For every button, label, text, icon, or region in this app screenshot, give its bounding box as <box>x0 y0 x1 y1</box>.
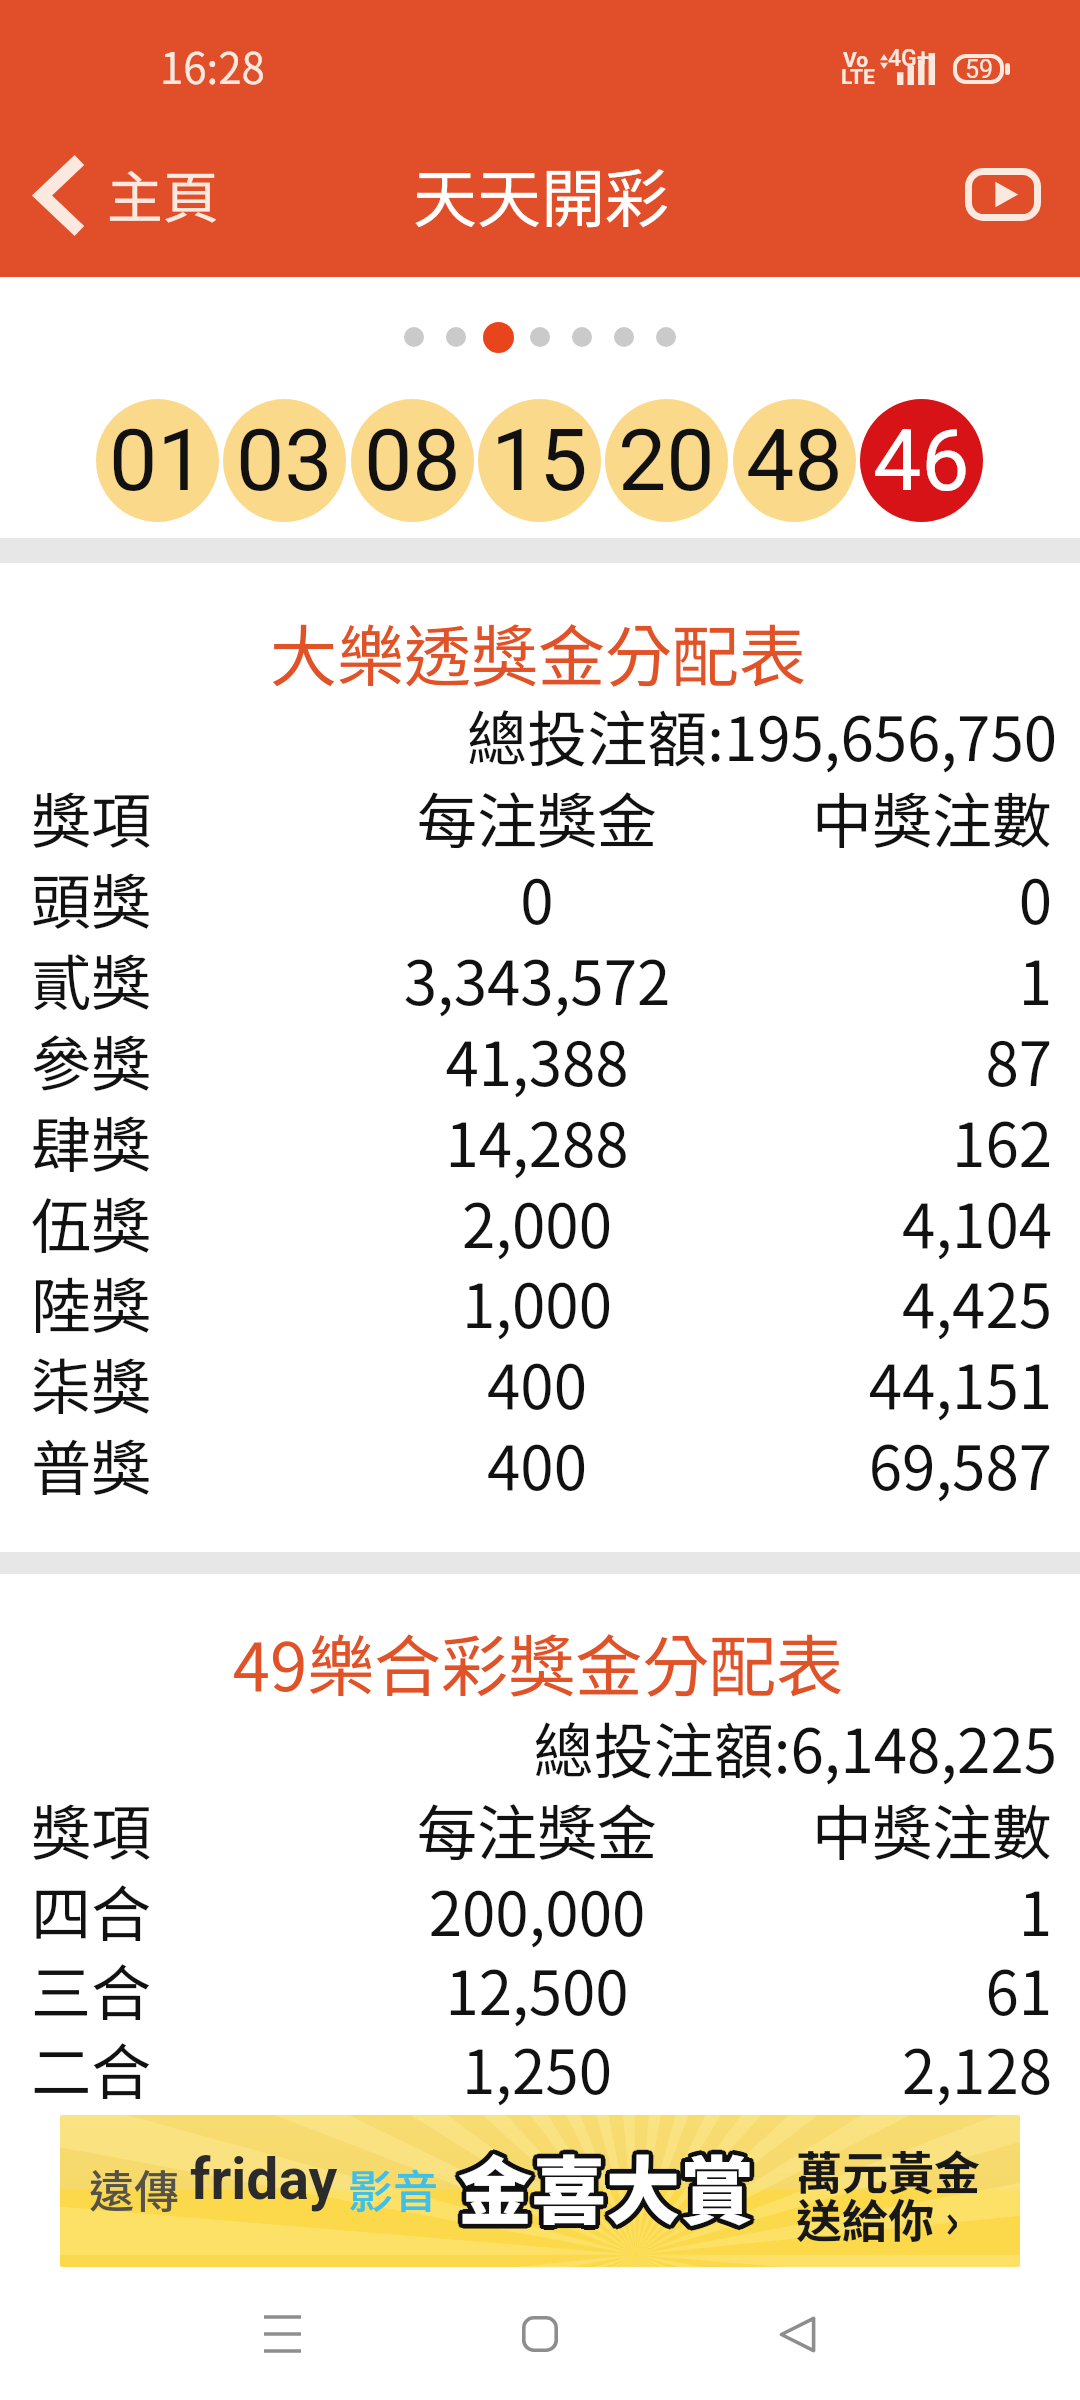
staticText: 金喜大賞 <box>458 2135 754 2242</box>
staticText: 金喜大賞 <box>454 2129 750 2236</box>
staticText: 金喜大賞 <box>455 2136 751 2243</box>
staticText: 貳獎 <box>31 935 151 1022</box>
button[interactable]: 08 <box>351 399 474 522</box>
staticText: 金喜大賞 <box>462 2131 758 2238</box>
button[interactable] <box>404 327 424 347</box>
staticText: 金喜大賞 <box>461 2130 757 2237</box>
staticText: 金喜大賞 <box>455 2129 751 2236</box>
staticText: friday <box>190 2146 338 2213</box>
staticText: 金喜大賞 <box>458 2127 754 2234</box>
staticText: 金喜大賞 <box>461 2128 757 2235</box>
button[interactable] <box>0 1351 1080 1431</box>
button[interactable]: 01 <box>96 399 219 522</box>
staticText: 49樂合彩獎金分配表 <box>38 1613 1038 1710</box>
staticText: 送給你 › <box>796 2185 960 2252</box>
button[interactable] <box>572 327 592 347</box>
button[interactable]: 遠傳 <box>60 2115 1020 2267</box>
button[interactable]: 15 <box>478 399 601 522</box>
button[interactable]: 46 <box>860 399 983 522</box>
button[interactable] <box>0 1108 1080 1188</box>
staticText: 4,104 <box>152 1178 1052 1265</box>
staticText: 金喜大賞 <box>459 2135 755 2242</box>
staticText: 15 <box>491 410 588 511</box>
staticText: 金喜大賞 <box>454 2130 750 2237</box>
staticText: 獎項 <box>31 773 151 860</box>
button[interactable]: 20 <box>605 399 728 522</box>
staticText: 金喜大賞 <box>454 2133 750 2240</box>
staticText: 46 <box>873 410 970 511</box>
staticText: 金喜大賞 <box>459 2133 755 2240</box>
staticText: 1 <box>152 935 1052 1022</box>
staticText: 每注獎金 <box>37 773 1037 860</box>
staticText: 08 <box>364 410 461 511</box>
staticText: 柒獎 <box>31 1339 151 1426</box>
staticText: 天天開彩 <box>41 148 1041 241</box>
staticText: 金喜大賞 <box>458 2132 754 2239</box>
button[interactable] <box>0 1957 1080 2037</box>
staticText: 金喜大賞 <box>456 2136 752 2243</box>
button[interactable]: 48 <box>733 399 856 522</box>
staticText: 獎項 <box>31 1785 151 1872</box>
staticText: 14,288 <box>37 1097 1037 1184</box>
staticText: 金喜大賞 <box>461 2129 757 2236</box>
staticText: 1,000 <box>37 1258 1037 1345</box>
staticText: 金喜大賞 <box>460 2129 756 2236</box>
button[interactable] <box>0 866 1080 946</box>
staticText: 4G+ <box>888 45 930 72</box>
button[interactable] <box>483 322 514 353</box>
staticText: 金喜大賞 <box>460 2130 756 2237</box>
button[interactable]: 主頁 <box>19 146 233 244</box>
button[interactable] <box>0 1432 1080 1512</box>
button[interactable] <box>614 327 634 347</box>
staticText: 400 <box>37 1420 1037 1507</box>
button[interactable] <box>0 1878 1080 1958</box>
button[interactable]: Video <box>945 146 1060 242</box>
button[interactable] <box>0 1270 1080 1350</box>
button[interactable] <box>530 327 550 347</box>
staticText: 金喜大賞 <box>458 2134 754 2241</box>
button[interactable]: Home <box>476 2290 604 2378</box>
staticText: 金喜大賞 <box>457 2130 753 2237</box>
staticText: 金喜大賞 <box>458 2131 754 2238</box>
staticText: 金喜大賞 <box>455 2130 751 2237</box>
button[interactable] <box>0 2036 1080 2116</box>
staticText: 金喜大賞 <box>456 2132 752 2239</box>
button[interactable]: 03 <box>223 399 346 522</box>
staticText: 金喜大賞 <box>459 2131 755 2238</box>
staticText: 普獎 <box>31 1420 151 1507</box>
button[interactable] <box>0 1189 1080 1269</box>
staticText: 金喜大賞 <box>462 2133 758 2240</box>
staticText: 61 <box>152 1945 1052 2032</box>
staticText: 金喜大賞 <box>455 2128 751 2235</box>
button[interactable]: Recents <box>218 2290 346 2378</box>
staticText: 金喜大賞 <box>456 2134 752 2241</box>
button[interactable] <box>656 327 676 347</box>
staticText: 金喜大賞 <box>462 2135 758 2242</box>
staticText: 金喜大賞 <box>457 2134 753 2241</box>
staticText: 金喜大賞 <box>460 2135 756 2242</box>
staticText: 參獎 <box>31 1016 151 1103</box>
staticText: 0 <box>152 854 1052 941</box>
staticText: 03 <box>236 410 333 511</box>
staticText: 金喜大賞 <box>459 2132 755 2239</box>
staticText: 金喜大賞 <box>461 2136 757 2243</box>
staticText: 59 <box>965 55 994 84</box>
button[interactable] <box>446 327 466 347</box>
button[interactable]: Back <box>733 2290 861 2378</box>
staticText: 金喜大賞 <box>459 2134 755 2241</box>
button[interactable] <box>0 1027 1080 1107</box>
button[interactable] <box>0 946 1080 1026</box>
staticText: 中獎注數 <box>152 773 1052 860</box>
staticText: 金喜大賞 <box>455 2133 751 2240</box>
staticText: 金喜大賞 <box>459 2136 755 2243</box>
button[interactable] <box>0 785 1080 865</box>
staticText: 金喜大賞 <box>457 2128 753 2235</box>
button[interactable] <box>0 1797 1080 1877</box>
staticText: 每注獎金 <box>37 1785 1037 1872</box>
staticText: 金喜大賞 <box>457 2135 753 2242</box>
staticText: 金喜大賞 <box>456 2135 752 2242</box>
staticText: 四合 <box>31 1866 151 1953</box>
staticText: 1 <box>152 1866 1052 1953</box>
staticText: 400 <box>37 1339 1037 1426</box>
staticText: 3,343,572 <box>37 935 1037 1022</box>
